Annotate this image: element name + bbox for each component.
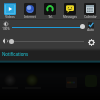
- staticText: Tel.: [48, 15, 53, 19]
- button[interactable]: Tel.: [40, 0, 60, 20]
- staticText: Internet: [24, 15, 36, 19]
- button[interactable]: Brightness slider: [80, 24, 85, 29]
- staticText: 100%: [2, 27, 10, 31]
- button[interactable]: Messages: [60, 0, 80, 20]
- staticText: Calendar: [84, 15, 97, 19]
- staticText: Auto: [87, 28, 94, 32]
- button[interactable]: Calendar: [80, 0, 100, 20]
- button[interactable]: Brightness: [1, 21, 11, 31]
- button[interactable]: Notifications: [0, 51, 100, 63]
- button[interactable]: Settings: [88, 39, 95, 46]
- button[interactable]: Auto: [85, 22, 96, 32]
- staticText: Messages: [63, 15, 77, 19]
- staticText: Notifications: [2, 51, 29, 57]
- button[interactable]: Volume: [3, 38, 9, 44]
- button[interactable]: Videos: [0, 0, 20, 20]
- staticText: Videos: [5, 15, 15, 19]
- button[interactable]: Internet: [20, 0, 40, 20]
- button[interactable]: Volume slider: [9, 39, 14, 44]
